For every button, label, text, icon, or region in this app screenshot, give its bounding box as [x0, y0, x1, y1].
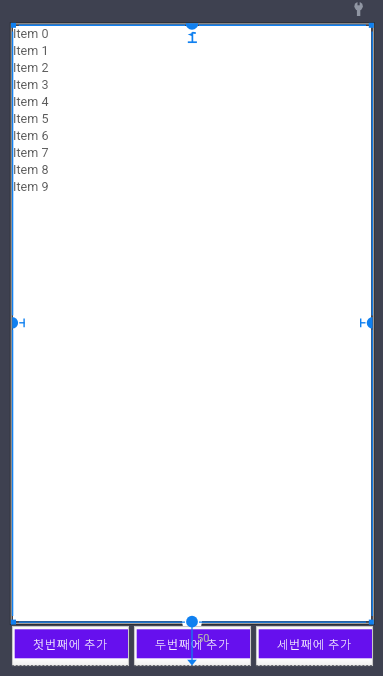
- button[interactable]: Item 3: [13, 76, 371, 93]
- staticText: Item 0: [13, 26, 49, 41]
- button[interactable]: Design tools: [349, 0, 369, 20]
- staticText: Item 1: [13, 43, 49, 58]
- button[interactable]: Item 0: [13, 25, 371, 42]
- button[interactable]: 세번째에 추가: [256, 626, 373, 666]
- button[interactable]: Item 4: [13, 93, 371, 110]
- staticText: Item 3: [13, 77, 49, 92]
- staticText: Item 9: [13, 179, 49, 194]
- staticText: 두번째에 추가: [155, 635, 230, 652]
- button[interactable]: Item 2: [13, 59, 371, 76]
- button[interactable]: Item 8: [13, 161, 371, 178]
- staticText: 세번째에 추가: [277, 635, 352, 652]
- button[interactable]: 첫번째에 추가: [12, 626, 129, 666]
- staticText: Item 4: [13, 94, 49, 109]
- button[interactable]: Item 5: [13, 110, 371, 127]
- button[interactable]: Item 7: [13, 144, 371, 161]
- staticText: Item 7: [13, 145, 49, 160]
- staticText: 첫번째에 추가: [33, 635, 108, 652]
- staticText: Item 2: [13, 60, 49, 75]
- button[interactable]: Item 6: [13, 127, 371, 144]
- staticText: Item 5: [13, 111, 49, 126]
- staticText: Item 8: [13, 162, 49, 177]
- staticText: Item 6: [13, 128, 49, 143]
- button[interactable]: 두번째에 추가: [134, 626, 251, 666]
- button[interactable]: Item 9: [13, 178, 371, 195]
- staticText: 50: [197, 632, 210, 645]
- button[interactable]: Item 1: [13, 42, 371, 59]
